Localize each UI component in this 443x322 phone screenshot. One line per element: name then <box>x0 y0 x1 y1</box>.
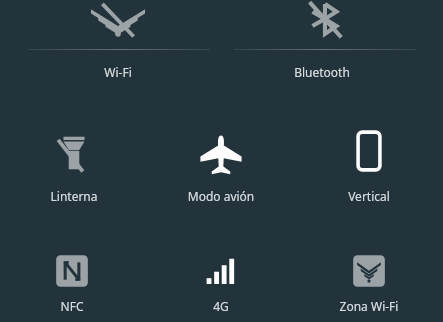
button[interactable]: Linterna <box>52 131 96 175</box>
button[interactable]: Modo avión <box>200 133 242 175</box>
button[interactable]: NFC <box>54 253 90 289</box>
staticText: Bluetooth <box>252 64 392 80</box>
staticText: Wi-Fi <box>48 64 188 80</box>
staticText: Modo avión <box>151 188 291 204</box>
staticText: 4G <box>151 298 291 314</box>
staticText: NFC <box>2 298 142 314</box>
staticText: Linterna <box>4 188 144 204</box>
button[interactable]: Bluetooth <box>300 0 348 40</box>
button[interactable]: Zona Wi-Fi <box>351 253 387 289</box>
staticText: Zona Wi-Fi <box>299 298 439 314</box>
button[interactable]: 4G <box>203 253 239 289</box>
staticText: Vertical <box>299 188 439 204</box>
button[interactable]: Wi-Fi <box>92 0 144 40</box>
button[interactable]: Vertical <box>348 130 390 172</box>
